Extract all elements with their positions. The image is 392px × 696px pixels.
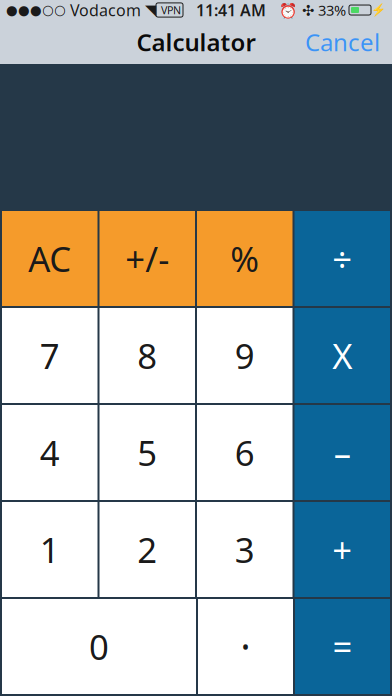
staticText: 3 [235, 526, 255, 572]
button[interactable]: = [295, 599, 390, 694]
button[interactable]: X [294, 308, 390, 403]
staticText: 2 [137, 526, 157, 572]
button[interactable]: • [198, 599, 293, 694]
staticText: 9 [235, 332, 255, 378]
button[interactable]: 7 [2, 308, 97, 403]
staticText: 7 [40, 332, 60, 378]
staticText: Calculator [136, 26, 255, 58]
staticText: ⚡ [371, 3, 386, 17]
staticText: 8 [137, 332, 157, 378]
button[interactable]: 1 [2, 502, 97, 597]
staticText: 6 [235, 429, 255, 475]
button[interactable]: ÷ [294, 211, 390, 306]
staticText: 1 [40, 526, 60, 572]
button[interactable]: 8 [99, 308, 195, 403]
staticText: ÷ [332, 235, 352, 281]
staticText: X [332, 332, 352, 378]
staticText: ●●●○○ [6, 2, 66, 17]
staticText: – [334, 429, 351, 475]
button[interactable]: % [197, 211, 292, 306]
button[interactable]: – [294, 405, 390, 500]
staticText: 4 [40, 429, 60, 475]
button[interactable]: AC [2, 211, 97, 306]
staticText: = [332, 623, 352, 669]
button[interactable]: 5 [99, 405, 195, 500]
staticText: 5 [137, 429, 157, 475]
button[interactable]: +/- [99, 211, 195, 306]
button[interactable]: 0 [2, 599, 196, 694]
staticText: • [241, 632, 249, 661]
button[interactable]: 3 [197, 502, 292, 597]
staticText: AC [28, 235, 71, 281]
button[interactable]: 2 [99, 502, 195, 597]
staticText: Vodacom [66, 0, 145, 21]
button[interactable]: + [294, 502, 390, 597]
staticText: Cancel [305, 26, 380, 58]
staticText: ◥ [145, 2, 156, 18]
button[interactable]: 6 [197, 405, 292, 500]
staticText: +/- [125, 235, 169, 281]
staticText: VPN [158, 3, 181, 17]
staticText: ⏰ ✣ 33% [279, 0, 346, 20]
staticText: % [230, 235, 259, 281]
staticText: + [332, 526, 352, 572]
button[interactable]: 9 [197, 308, 292, 403]
staticText: 0 [89, 623, 109, 669]
staticText: 11:41 AM [196, 0, 266, 21]
button[interactable]: Cancel [293, 18, 392, 66]
button[interactable]: 4 [2, 405, 97, 500]
